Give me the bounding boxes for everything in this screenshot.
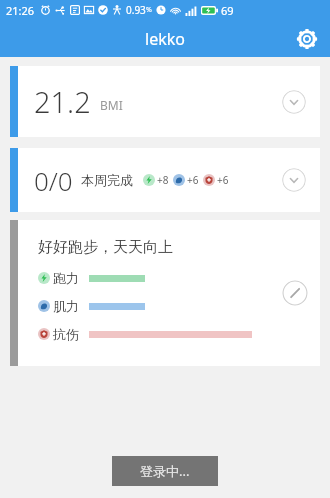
button[interactable]: 好好跑步，天天向上 — [10, 220, 320, 366]
button[interactable]: 0/0 — [10, 148, 320, 212]
staticText: 0/0 — [34, 163, 73, 198]
staticText: +6 — [187, 173, 199, 187]
button[interactable]: Expand — [282, 90, 306, 114]
staticText: BMI — [100, 97, 123, 113]
staticText: 肌力 — [53, 298, 79, 314]
staticText: 21.2 — [34, 82, 91, 121]
staticText: % — [146, 5, 152, 15]
button[interactable]: Edit — [282, 280, 308, 306]
staticText: lekko — [145, 28, 185, 50]
staticText: 抗伤 — [53, 326, 79, 342]
button[interactable]: 21.2 — [10, 66, 320, 137]
staticText: 跑力 — [53, 270, 79, 286]
button[interactable]: 登录中... — [112, 456, 218, 486]
staticText: 0.93 — [126, 3, 146, 17]
staticText: 本周完成 — [81, 172, 133, 188]
button[interactable]: Settings — [292, 24, 322, 54]
button[interactable]: Expand — [282, 168, 306, 192]
staticText: 21:26 — [6, 3, 35, 18]
staticText: 69 — [221, 3, 234, 18]
staticText: 登录中... — [140, 462, 190, 480]
staticText: +8 — [157, 173, 169, 187]
staticText: 好好跑步，天天向上 — [38, 238, 173, 257]
staticText: +6 — [217, 173, 229, 187]
